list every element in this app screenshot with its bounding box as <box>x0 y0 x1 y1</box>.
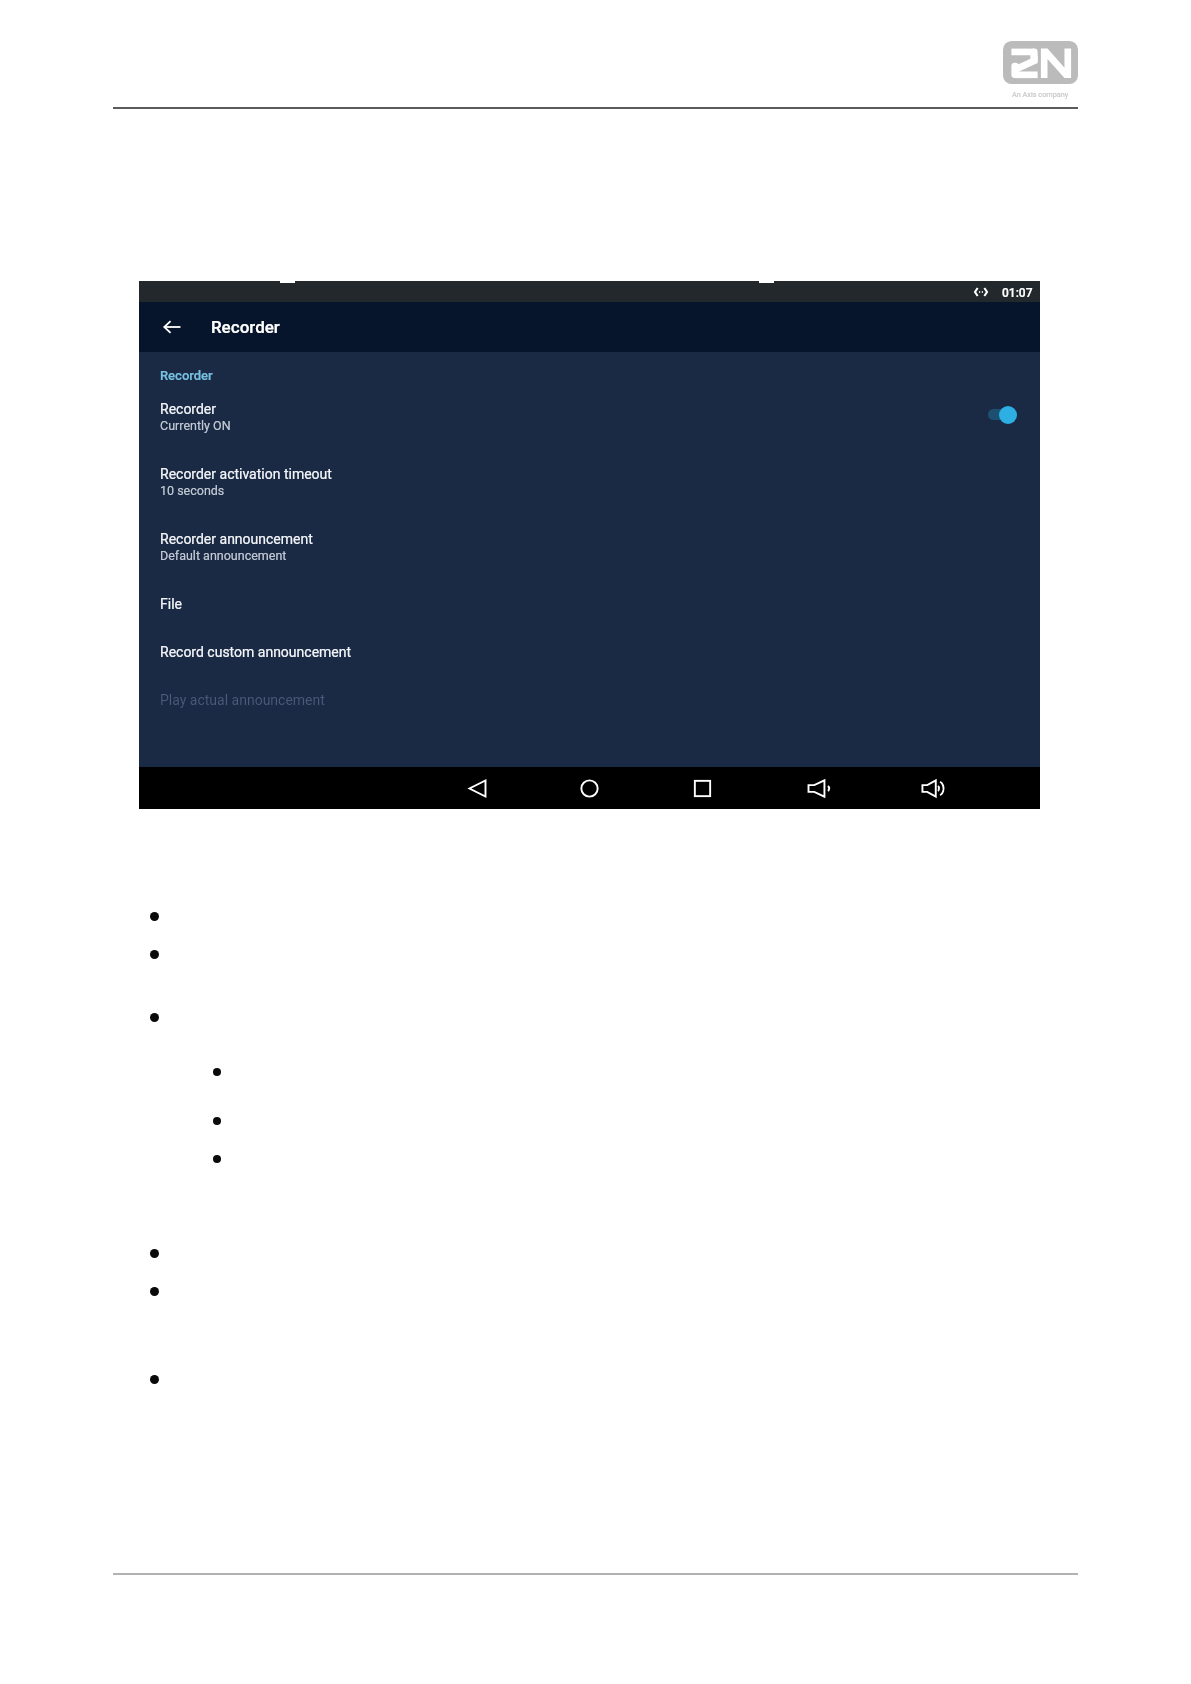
button[interactable]: Volume down <box>802 767 836 809</box>
staticText: Recorder <box>211 317 280 337</box>
staticText: Recorder <box>160 401 217 417</box>
button[interactable]: Recorder announcement <box>139 526 1040 572</box>
staticText: File <box>160 596 182 612</box>
staticText: Recorder <box>160 368 213 383</box>
button[interactable]: Volume up <box>916 767 950 809</box>
button[interactable]: Recent apps <box>685 767 719 809</box>
staticText: An Axis company <box>1012 90 1069 99</box>
button[interactable]: Back <box>460 767 494 809</box>
staticText: Record custom announcement <box>160 644 352 660</box>
staticText: 10 seconds <box>160 483 225 498</box>
button[interactable]: Recorder activation timeout <box>139 461 1040 507</box>
staticText: Play actual announcement <box>160 692 325 708</box>
button[interactable]: File <box>139 591 1040 631</box>
other: Ethernet connected <box>974 288 988 296</box>
button[interactable]: Record custom announcement <box>139 639 1040 679</box>
staticText: Default announcement <box>160 548 287 563</box>
button[interactable]: Recorder <box>139 396 1040 442</box>
staticText: Currently ON <box>160 418 231 433</box>
staticText: Recorder activation timeout <box>160 466 332 482</box>
staticText: 01:07 <box>1002 286 1033 300</box>
button[interactable]: Recorder on <box>979 400 1027 428</box>
button[interactable]: Play actual announcement <box>139 687 1040 727</box>
button[interactable]: Home <box>572 767 606 809</box>
staticText: Recorder announcement <box>160 531 313 547</box>
button[interactable]: Back <box>150 305 194 349</box>
